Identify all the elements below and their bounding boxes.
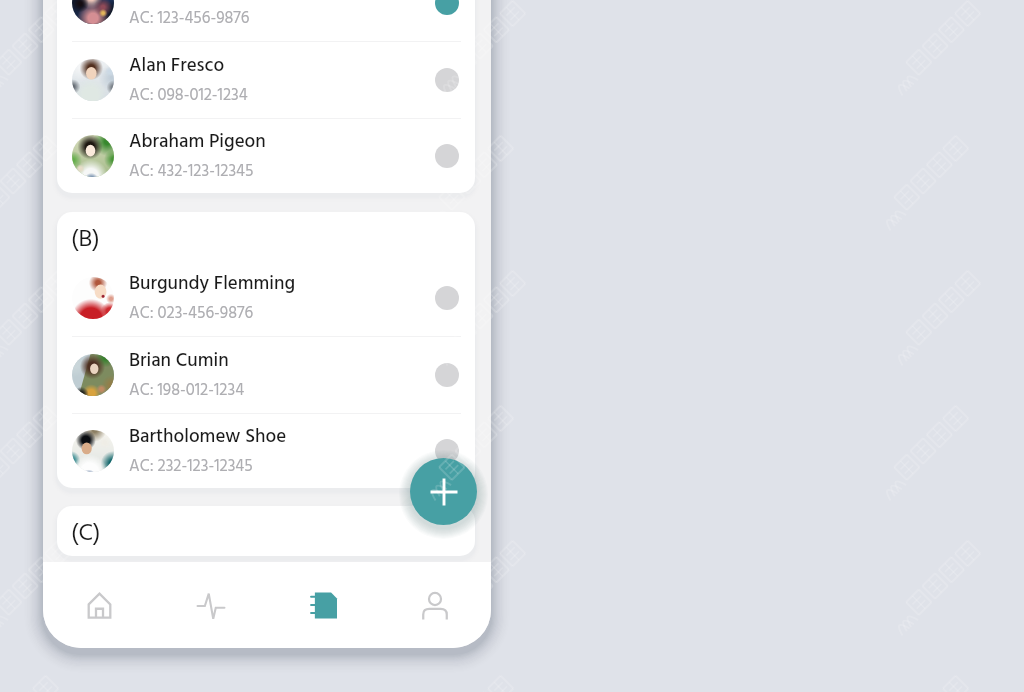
button[interactable]: Profile — [379, 562, 491, 648]
staticText: (C) — [71, 515, 101, 553]
staticText: AC: 432-123-12345 — [129, 159, 254, 185]
button[interactable]: Contacts — [267, 562, 379, 648]
button[interactable]: Burgundy Flemming — [57, 259, 475, 336]
staticText: AC: 232-123-12345 — [129, 454, 253, 480]
button[interactable]: Activity — [155, 562, 267, 648]
button[interactable]: Home — [43, 562, 155, 648]
staticText: (B) — [71, 221, 100, 259]
staticText: Bartholomew Shoe — [129, 422, 287, 452]
staticText: Alan Fresco — [129, 51, 225, 81]
button[interactable]: Abraham Pigeon — [57, 118, 475, 193]
staticText: AC: 098-012-1234 — [129, 83, 248, 109]
button[interactable]: Add contact — [410, 458, 477, 525]
button[interactable]: Bartholomew Shoe — [57, 413, 475, 488]
button[interactable]: Alan Fresco — [57, 41, 475, 118]
staticText: AC: 198-012-1234 — [129, 378, 245, 404]
button[interactable]: Ashley Crawford — [57, 0, 475, 41]
staticText: AC: 123-456-9876 — [129, 6, 250, 32]
staticText: Brian Cumin — [129, 346, 229, 376]
staticText: AC: 023-456-9876 — [129, 301, 254, 327]
staticText: Burgundy Flemming — [129, 269, 296, 299]
staticText: Abraham Pigeon — [129, 127, 266, 157]
button[interactable]: Brian Cumin — [57, 336, 475, 413]
